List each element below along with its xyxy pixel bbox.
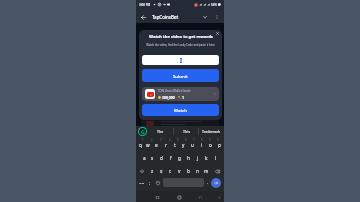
button[interactable]: m [202, 165, 211, 177]
staticText: 4 [169, 138, 171, 142]
staticText: Submit [173, 73, 188, 79]
button[interactable]: Backspace [211, 165, 224, 177]
button[interactable]: q [136, 138, 144, 151]
button[interactable]: Expand [200, 12, 210, 22]
button[interactable]: Trademark [199, 126, 224, 137]
button[interactable]: t [170, 138, 179, 151]
staticText: 300,000 [162, 95, 175, 100]
button[interactable]: Grammarly [138, 127, 147, 136]
staticText: 6 [185, 138, 187, 142]
staticText: p [218, 142, 221, 148]
staticText: l [215, 155, 217, 161]
staticText: q [139, 142, 142, 148]
button[interactable]: x [157, 165, 166, 177]
button[interactable]: More options [212, 12, 222, 22]
staticText: ; [149, 180, 151, 186]
staticText: n [196, 168, 199, 174]
staticText: 3 [160, 138, 162, 142]
button[interactable]: w [144, 138, 152, 151]
staticText: m [204, 168, 209, 174]
button[interactable]: s [148, 151, 157, 164]
button[interactable] [142, 55, 219, 65]
staticText: d [160, 155, 163, 161]
staticText: TON Chain Wallet Guide [158, 89, 191, 93]
staticText: 8 [201, 138, 203, 142]
staticText: y [182, 142, 185, 148]
button[interactable]: h [184, 151, 193, 164]
button[interactable]: f [166, 151, 175, 164]
button[interactable]: c [166, 165, 175, 177]
staticText: Watch the video to get rewards [149, 34, 213, 40]
staticText: TapCoinsBot [152, 14, 179, 20]
staticText: a [143, 155, 146, 161]
staticText: z [151, 168, 154, 174]
staticText: x [160, 168, 163, 174]
staticText: 5 [177, 138, 179, 142]
button[interactable]: ; [146, 176, 153, 189]
button[interactable]: b [184, 165, 193, 177]
staticText: i [201, 142, 203, 148]
button[interactable]: u [188, 138, 197, 151]
staticText: j [197, 155, 199, 161]
staticText: u [191, 142, 194, 148]
button[interactable]: z [148, 165, 157, 177]
button[interactable]: Home [175, 193, 183, 201]
button[interactable]: i [197, 138, 206, 151]
button[interactable]: Emoji [153, 176, 163, 189]
button[interactable]: Hide keyboard [215, 193, 223, 201]
staticText: 2 [151, 138, 153, 142]
staticText: ?123 [139, 181, 145, 184]
staticText: . [207, 180, 209, 186]
button[interactable]: n [193, 165, 202, 177]
button[interactable]: v [175, 165, 184, 177]
button[interactable]: j [193, 151, 202, 164]
staticText: r [165, 142, 167, 148]
staticText: k [205, 155, 208, 161]
button[interactable]: Shift [136, 165, 148, 177]
button[interactable]: The [148, 126, 173, 137]
button[interactable]: Submit [142, 69, 219, 82]
staticText: b [187, 168, 190, 174]
button[interactable]: k [202, 151, 211, 164]
staticText: 9 [209, 138, 211, 142]
staticText: v [178, 168, 181, 174]
button[interactable]: r [161, 138, 170, 151]
button[interactable]: Back [196, 193, 204, 201]
button[interactable]: TON Chain Wallet Guide [142, 87, 219, 101]
staticText: o [209, 142, 212, 148]
button[interactable]: Symbols [138, 176, 146, 189]
staticText: g [178, 155, 181, 161]
button[interactable]: Enter [211, 178, 221, 188]
staticText: 54% [211, 3, 217, 7]
staticText: Watch [174, 107, 187, 113]
staticText: Watch the video, find the Lucky Code and… [146, 43, 215, 47]
button[interactable]: e [152, 138, 161, 151]
button[interactable]: y [179, 138, 188, 151]
staticText: e [155, 142, 158, 148]
staticText: s [151, 155, 154, 161]
button[interactable]: g [175, 151, 184, 164]
button[interactable]: . [204, 176, 211, 189]
button[interactable]: This [174, 126, 198, 137]
button[interactable]: a [140, 151, 148, 164]
staticText: The [157, 129, 164, 134]
button[interactable]: l [211, 151, 220, 164]
staticText: f [170, 155, 172, 161]
button[interactable]: Recents [153, 193, 161, 201]
staticText: 3:08 PM [139, 3, 151, 7]
staticText: This [183, 129, 190, 134]
button[interactable]: Back [138, 12, 148, 22]
button[interactable]: o [206, 138, 215, 151]
staticText: t [174, 142, 176, 148]
staticText: 0 [217, 138, 219, 142]
button[interactable]: p [215, 138, 224, 151]
staticText: c [169, 168, 172, 174]
button[interactable]: Watch [142, 104, 219, 116]
staticText: 1 [142, 138, 144, 142]
button[interactable]: Close [214, 30, 221, 37]
staticText: w [146, 142, 150, 148]
staticText: 1 [182, 95, 184, 100]
staticText: h [187, 155, 190, 161]
button[interactable]: d [157, 151, 166, 164]
